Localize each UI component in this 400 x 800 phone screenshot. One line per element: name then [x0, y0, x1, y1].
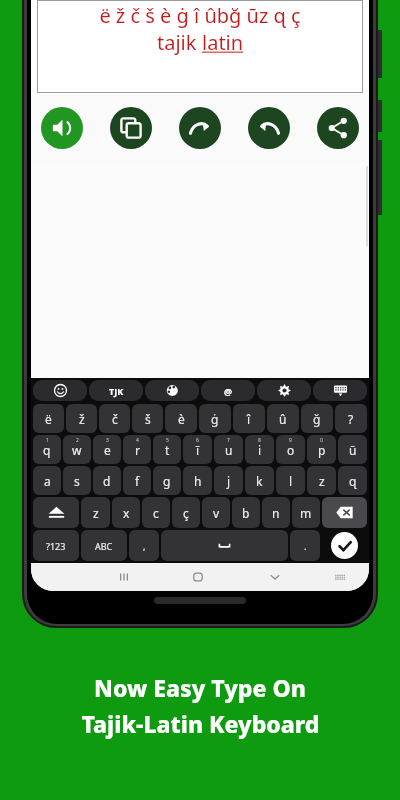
staticText: è [178, 411, 185, 427]
button[interactable]: , [129, 530, 159, 561]
button[interactable]: č [99, 404, 130, 433]
button[interactable]: Hide keyboard [239, 563, 310, 591]
button[interactable]: k [245, 466, 274, 495]
staticText: i [258, 442, 262, 458]
button[interactable]: Redo [179, 107, 221, 149]
button[interactable]: û [267, 404, 299, 433]
button[interactable]: p [307, 435, 336, 464]
staticText: s [74, 473, 80, 489]
button[interactable]: h [183, 466, 212, 495]
button[interactable]: Enter [331, 532, 358, 559]
staticText: 6 [196, 437, 199, 444]
button[interactable]: Settings [257, 380, 311, 401]
staticText: 1 [46, 437, 49, 444]
button[interactable]: Recents [91, 563, 156, 591]
button[interactable]: n [262, 497, 290, 528]
staticText: ç [183, 505, 189, 521]
button[interactable]: q [33, 435, 61, 464]
button[interactable]: r [123, 435, 151, 464]
staticText: p [318, 442, 326, 458]
staticText: ?123 [46, 540, 66, 552]
button[interactable]: è [165, 404, 197, 433]
staticText: Tajik-Latin Keyboard [81, 708, 320, 739]
button[interactable]: v [202, 497, 230, 528]
button[interactable]: . [290, 530, 320, 561]
staticText: u [225, 442, 233, 458]
staticText: z [93, 505, 99, 521]
staticText: û [279, 411, 287, 427]
staticText: č [112, 411, 118, 427]
button[interactable]: ? [335, 404, 367, 433]
button[interactable]: Share [317, 107, 359, 149]
staticText: j [227, 473, 231, 489]
staticText: 3 [106, 437, 109, 444]
button[interactable]: u [214, 435, 243, 464]
button[interactable]: ū [338, 435, 367, 464]
staticText: TJK [109, 385, 124, 397]
button[interactable]: g [153, 466, 181, 495]
staticText: 5 [166, 437, 169, 444]
button[interactable]: l [276, 466, 305, 495]
button[interactable]: Undo [248, 107, 290, 149]
button[interactable]: Speak [41, 107, 83, 149]
button[interactable]: j [214, 466, 243, 495]
button[interactable]: b [232, 497, 260, 528]
button[interactable]: z [307, 466, 336, 495]
button[interactable]: o [276, 435, 305, 464]
button[interactable]: Shift [33, 497, 79, 528]
button[interactable]: e [93, 435, 121, 464]
button[interactable]: i [245, 435, 274, 464]
button[interactable]: î [233, 404, 265, 433]
button[interactable]: Space [161, 530, 288, 561]
button[interactable]: ë ž č š è ġ î ûbğ ūz ɋ ç [37, 0, 363, 93]
staticText: ABC [95, 540, 113, 552]
staticText: ū [349, 442, 357, 458]
staticText: ë ž č š è ġ î ûbğ ūz ɋ ç [99, 2, 301, 29]
button[interactable]: m [292, 497, 320, 528]
staticText: š [145, 411, 151, 427]
button[interactable]: Keyboard [313, 380, 367, 401]
button[interactable]: @ [201, 380, 255, 401]
button[interactable]: ğ [301, 404, 333, 433]
staticText: z [319, 473, 325, 489]
button[interactable]: Home [156, 563, 239, 591]
staticText: tajik [157, 29, 202, 56]
staticText: o [287, 442, 295, 458]
button[interactable]: s [63, 466, 91, 495]
staticText: Now Easy Type On [94, 672, 306, 703]
button[interactable]: TJK [89, 380, 143, 401]
button[interactable]: w [63, 435, 91, 464]
staticText: ġ [211, 411, 219, 427]
button[interactable]: t [153, 435, 181, 464]
button[interactable]: f [123, 466, 151, 495]
staticText: ë [45, 411, 52, 427]
button[interactable]: a [33, 466, 61, 495]
button[interactable]: z [81, 497, 110, 528]
staticText: x [123, 505, 130, 521]
button[interactable]: ç [172, 497, 200, 528]
button[interactable]: Copy [110, 107, 152, 149]
button[interactable]: Theme [145, 380, 199, 401]
button[interactable]: c [142, 497, 170, 528]
button[interactable]: ?123 [33, 530, 79, 561]
button[interactable]: Switch keyboard [310, 563, 369, 591]
button[interactable]: d [93, 466, 121, 495]
staticText: ī [196, 442, 200, 458]
button[interactable]: š [132, 404, 163, 433]
staticText: n [272, 505, 280, 521]
button[interactable]: x [112, 497, 140, 528]
button[interactable]: ž [66, 404, 97, 433]
staticText: , [143, 540, 146, 552]
staticText: d [103, 473, 111, 489]
button[interactable]: ġ [199, 404, 231, 433]
staticText: t [165, 442, 170, 458]
button[interactable]: Backspace [322, 497, 367, 528]
staticText: 4 [136, 437, 139, 444]
button[interactable]: ë [33, 404, 64, 433]
button[interactable]: ABC [81, 530, 127, 561]
staticText: k [256, 473, 263, 489]
button[interactable]: ɋ [338, 466, 367, 495]
button[interactable]: ī [183, 435, 212, 464]
button[interactable]: Emoji [33, 380, 87, 401]
staticText: 7 [227, 437, 230, 444]
